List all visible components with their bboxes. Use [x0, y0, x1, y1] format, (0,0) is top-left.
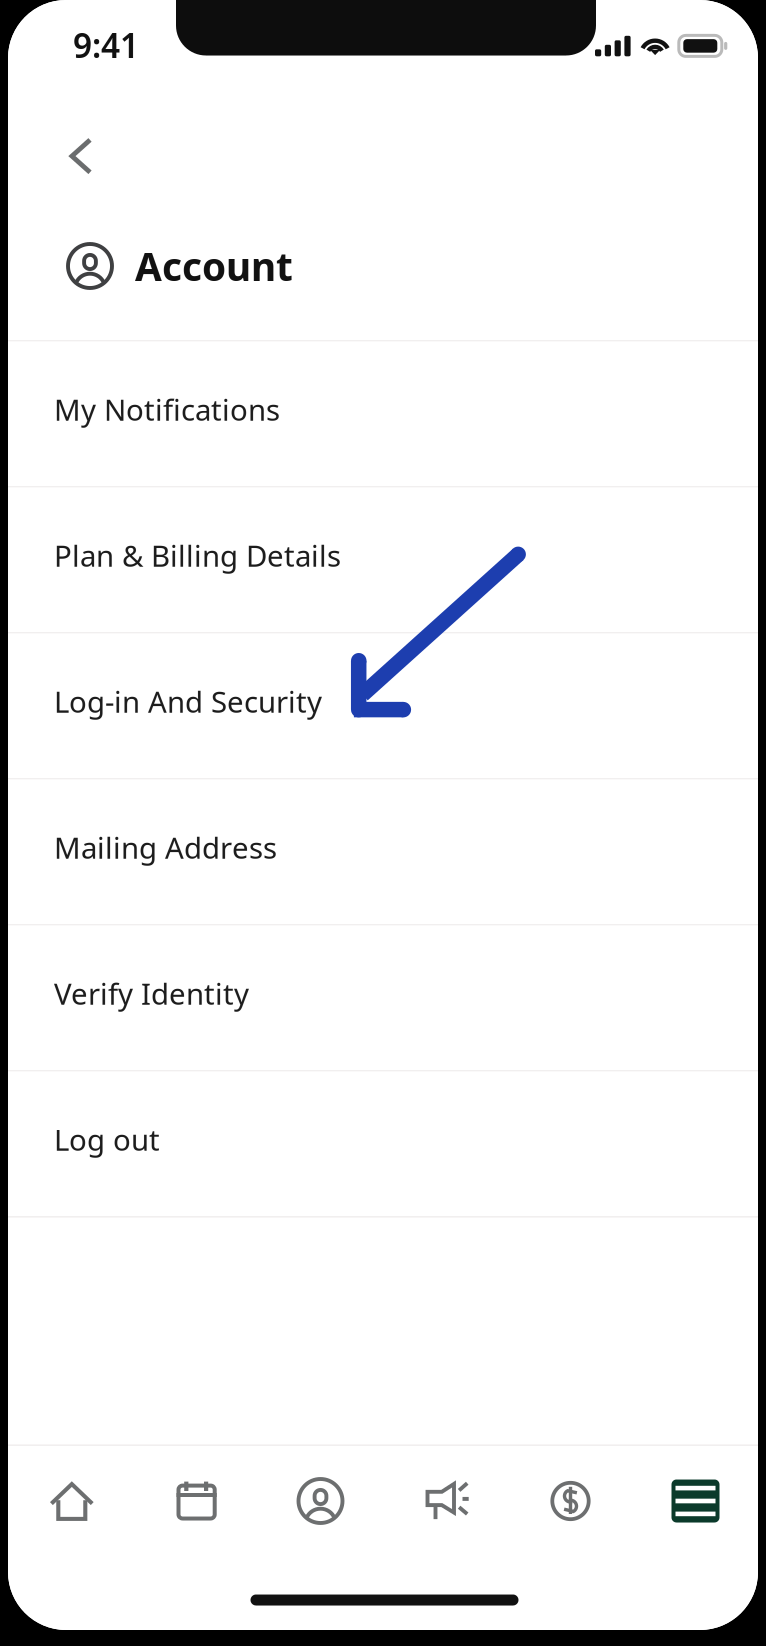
button[interactable]: My Notifications [8, 342, 758, 486]
button[interactable]: Verify Identity [8, 926, 758, 1070]
staticText: 9:41 [73, 23, 139, 67]
staticText: Log-in And Security [54, 682, 322, 721]
button[interactable]: More [633, 1446, 758, 1556]
staticText: Plan & Billing Details [54, 536, 341, 575]
button[interactable]: Payments [508, 1446, 633, 1556]
staticText: My Notifications [54, 390, 280, 429]
staticText: Account [135, 240, 293, 292]
staticText: Mailing Address [54, 828, 277, 867]
button[interactable]: Announcements [383, 1446, 508, 1556]
button[interactable]: Log out [8, 1072, 758, 1216]
button[interactable]: Home [8, 1446, 133, 1556]
button[interactable]: Log-in And Security [8, 634, 758, 778]
button[interactable]: Account [258, 1446, 383, 1556]
button[interactable]: Plan & Billing Details [8, 488, 758, 632]
button[interactable]: Calendar [133, 1446, 258, 1556]
button[interactable]: Back [43, 118, 119, 194]
button[interactable]: Mailing Address [8, 780, 758, 924]
staticText: Verify Identity [54, 974, 249, 1013]
staticText: Log out [54, 1120, 160, 1159]
